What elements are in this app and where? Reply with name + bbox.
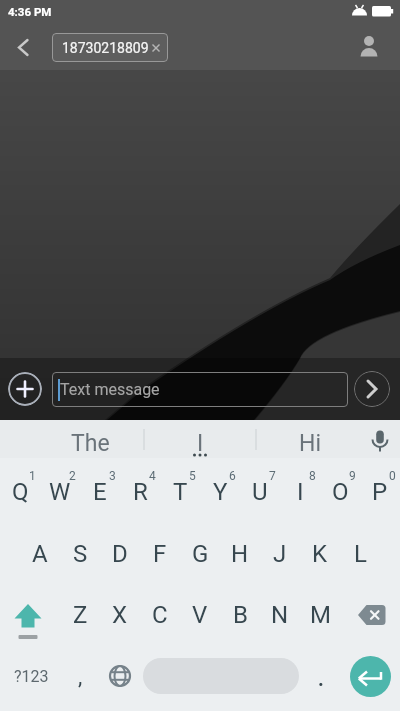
staticText: G [192, 540, 209, 568]
button[interactable]: S [60, 521, 100, 584]
button[interactable]: O [320, 458, 360, 521]
button[interactable]: ?123 [0, 647, 56, 711]
staticText: U [252, 478, 268, 506]
staticText: I [297, 478, 304, 506]
button[interactable] [340, 584, 400, 647]
staticText: 18730218809 [62, 40, 149, 56]
staticText: P [372, 478, 388, 506]
button[interactable] [340, 647, 400, 711]
staticText: 0 [389, 469, 396, 483]
staticText: X [112, 601, 128, 629]
staticText: , [78, 664, 83, 690]
staticText: O [332, 478, 349, 506]
button[interactable]: N [260, 584, 300, 647]
staticText: M [310, 601, 331, 629]
button[interactable]: I [280, 458, 320, 521]
button[interactable] [6, 30, 38, 62]
staticText: J [273, 540, 287, 568]
staticText: 2 [69, 469, 76, 483]
staticText: E [93, 478, 107, 506]
staticText: I [197, 430, 204, 457]
button[interactable]: E [80, 458, 120, 521]
button[interactable]: X [100, 584, 140, 647]
button[interactable]: V [180, 584, 220, 647]
button[interactable]: A [20, 521, 60, 584]
button[interactable]: D [100, 521, 140, 584]
staticText: H [231, 540, 249, 568]
staticText: L [354, 540, 367, 568]
button[interactable]: F [140, 521, 180, 584]
button[interactable]: Y [200, 458, 240, 521]
button[interactable]: R [120, 458, 160, 521]
staticText: Z [73, 601, 88, 629]
staticText: 3 [109, 469, 116, 483]
button[interactable]: The [36, 420, 144, 458]
staticText: Text message [60, 380, 160, 399]
staticText: 6 [229, 469, 236, 483]
staticText: 7 [269, 469, 276, 483]
button[interactable]: . [302, 647, 340, 711]
staticText: 4 [149, 469, 156, 483]
staticText: ?123 [14, 667, 49, 686]
button[interactable]: 18730218809 [52, 33, 168, 62]
staticText: S [73, 540, 88, 568]
button[interactable]: W [40, 458, 80, 521]
staticText: . [318, 667, 324, 690]
button[interactable]: Text message [52, 372, 348, 407]
staticText: V [192, 601, 208, 629]
button[interactable]: Q [0, 458, 40, 521]
staticText: N [271, 601, 289, 629]
staticText: Hi [299, 430, 322, 457]
button[interactable]: T [160, 458, 200, 521]
staticText: 1 [29, 469, 36, 483]
staticText: 5 [189, 469, 196, 483]
button[interactable]: J [260, 521, 300, 584]
button[interactable] [8, 372, 42, 406]
staticText: T [173, 478, 188, 506]
staticText: W [49, 478, 71, 506]
button[interactable]: P [360, 458, 400, 521]
staticText: The [71, 430, 110, 457]
button[interactable] [0, 584, 60, 647]
button[interactable]: L [340, 521, 380, 584]
button[interactable]: Z [60, 584, 100, 647]
button[interactable]: K [300, 521, 340, 584]
button[interactable]: , [56, 647, 104, 711]
staticText: Q [12, 478, 29, 506]
button[interactable]: I [144, 420, 256, 458]
button[interactable] [104, 647, 140, 711]
staticText: Y [213, 478, 228, 506]
staticText: B [233, 601, 248, 629]
staticText: R [133, 478, 148, 506]
button[interactable] [354, 371, 390, 407]
button[interactable]: M [300, 584, 340, 647]
staticText: D [112, 540, 128, 568]
button[interactable]: G [180, 521, 220, 584]
button[interactable]: C [140, 584, 180, 647]
button[interactable] [358, 35, 380, 57]
staticText: A [32, 540, 48, 568]
button[interactable] [366, 425, 394, 453]
button[interactable]: U [240, 458, 280, 521]
staticText: 8 [309, 469, 316, 483]
staticText: F [153, 540, 167, 568]
staticText: K [312, 540, 328, 568]
button[interactable]: B [220, 584, 260, 647]
staticText: 9 [349, 469, 356, 483]
button[interactable]: Hi [256, 420, 364, 458]
button[interactable] [140, 647, 302, 711]
button[interactable]: H [220, 521, 260, 584]
staticText: 4:36 PM [8, 5, 52, 18]
staticText: C [152, 601, 168, 629]
